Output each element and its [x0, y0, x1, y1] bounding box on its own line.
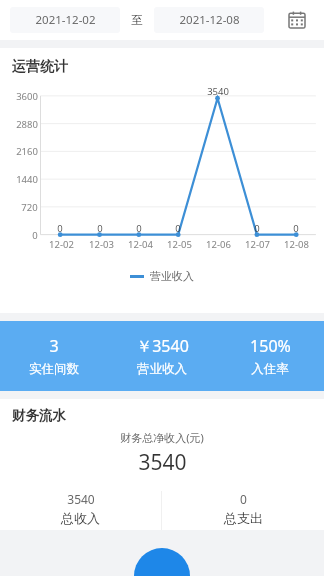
staticText: ￥3540	[136, 335, 189, 357]
staticText: 12-07	[245, 238, 270, 251]
button[interactable]: Add	[134, 548, 190, 576]
staticText: 150%	[250, 335, 291, 357]
staticText: 0	[32, 229, 38, 242]
button[interactable]: 3	[0, 321, 108, 391]
staticText: 12-08	[284, 238, 309, 251]
staticText: 0	[57, 222, 63, 235]
staticText: 实住间数	[29, 361, 79, 377]
staticText: 12-02	[49, 238, 74, 251]
staticText: 3540	[207, 85, 229, 98]
staticText: 至	[131, 13, 143, 27]
button[interactable]: 2021-12-08	[154, 7, 264, 33]
staticText: 总支出	[224, 510, 263, 526]
staticText: 2880	[16, 118, 38, 131]
staticText: 12-06	[206, 238, 231, 251]
staticText: 3540	[67, 491, 95, 507]
staticText: 0	[293, 222, 299, 235]
button[interactable]: ￥3540	[108, 321, 216, 391]
staticText: 3600	[16, 90, 38, 103]
staticText: 0	[175, 222, 181, 235]
staticText: 12-04	[128, 238, 153, 251]
staticText: 2160	[16, 145, 38, 158]
staticText: 0	[97, 222, 103, 235]
staticText: 1440	[16, 173, 38, 186]
staticText: 0	[240, 491, 247, 507]
staticText: 12-05	[167, 238, 192, 251]
staticText: 财务流水	[12, 407, 66, 424]
staticText: 总收入	[61, 510, 100, 526]
staticText: 2021-12-08	[179, 12, 240, 28]
button[interactable]: 150%	[216, 321, 324, 391]
staticText: 财务总净收入(元)	[120, 430, 204, 445]
staticText: 入住率	[251, 361, 289, 377]
staticText: 12-03	[89, 238, 114, 251]
button[interactable]: 2021-12-02	[10, 7, 120, 33]
staticText: 2021-12-02	[35, 12, 96, 28]
staticText: 720	[21, 201, 38, 214]
staticText: 营业收入	[137, 361, 187, 377]
staticText: 0	[254, 222, 260, 235]
staticText: 营业收入	[150, 269, 194, 283]
staticText: 3540	[138, 448, 187, 477]
button[interactable]: Calendar	[280, 3, 314, 37]
staticText: 0	[136, 222, 142, 235]
staticText: 3	[49, 335, 59, 357]
staticText: 运营统计	[12, 58, 68, 76]
